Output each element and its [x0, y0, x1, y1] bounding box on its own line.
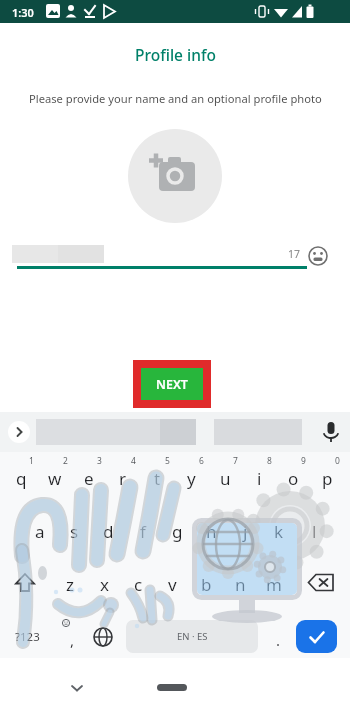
staticText: s — [70, 520, 79, 543]
staticText: 6 — [199, 455, 204, 467]
button[interactable]: h — [194, 517, 228, 545]
button[interactable]: e — [72, 464, 106, 492]
staticText: 1:30 — [12, 5, 34, 20]
button[interactable]: 7 — [228, 455, 242, 467]
button[interactable]: f — [126, 517, 160, 545]
staticText: i — [257, 467, 262, 490]
staticText: q — [16, 467, 27, 490]
staticText: p — [322, 467, 333, 490]
button[interactable]: x — [87, 570, 121, 598]
staticText: f — [140, 520, 146, 543]
staticText: u — [220, 467, 231, 490]
staticText: z — [66, 573, 74, 596]
staticText: 7 — [233, 455, 238, 467]
button[interactable]: u — [208, 464, 242, 492]
staticText: d — [103, 520, 114, 543]
staticText: e — [84, 467, 94, 490]
button[interactable]: n — [223, 570, 257, 598]
staticText: h — [206, 520, 217, 543]
staticText: ?123 — [15, 629, 40, 645]
button[interactable]: 4 — [126, 455, 140, 467]
staticText: 17 — [288, 247, 301, 261]
button[interactable]: s — [57, 517, 91, 545]
staticText: w — [48, 467, 62, 490]
staticText: 5 — [165, 455, 170, 467]
button[interactable]: v — [155, 570, 189, 598]
button[interactable]: w — [38, 464, 72, 492]
staticText: m — [266, 573, 282, 596]
button[interactable]: 9 — [296, 455, 310, 467]
button[interactable] — [305, 570, 339, 598]
staticText: 0 — [335, 455, 340, 467]
button[interactable]: 8 — [262, 455, 276, 467]
staticText: 8 — [267, 455, 272, 467]
staticText: o — [288, 467, 299, 490]
button[interactable] — [10, 570, 40, 598]
button[interactable] — [306, 244, 330, 268]
button[interactable]: , — [55, 626, 89, 654]
button[interactable]: k — [262, 517, 296, 545]
button[interactable]: . — [261, 626, 295, 654]
button[interactable]: g — [160, 517, 194, 545]
button[interactable]: m — [257, 570, 291, 598]
button[interactable]: p — [310, 464, 344, 492]
staticText: EN · ES — [177, 630, 208, 643]
button[interactable]: i — [242, 464, 276, 492]
button[interactable]: a — [23, 517, 57, 545]
staticText: b — [201, 573, 212, 596]
button[interactable]: y — [174, 464, 208, 492]
staticText: g — [172, 520, 183, 543]
button[interactable]: c — [121, 570, 155, 598]
staticText: NEXT — [156, 376, 188, 393]
button[interactable] — [128, 129, 222, 223]
staticText: 3 — [97, 455, 102, 467]
button[interactable]: 1 — [24, 455, 38, 467]
staticText: j — [243, 520, 248, 543]
button[interactable]: 0 — [330, 455, 344, 467]
staticText: 9 — [301, 455, 306, 467]
button[interactable] — [296, 620, 337, 653]
staticText: v — [168, 573, 177, 596]
staticText: . — [276, 630, 281, 650]
button[interactable]: 3 — [92, 455, 106, 467]
staticText: k — [274, 520, 284, 543]
button[interactable]: NEXT — [141, 368, 203, 400]
button[interactable]: q — [4, 464, 38, 492]
button[interactable] — [157, 684, 187, 691]
staticText: 4 — [131, 455, 136, 467]
staticText: l — [312, 520, 317, 543]
button[interactable]: EN · ES — [126, 620, 258, 653]
staticText: a — [35, 520, 45, 543]
button[interactable] — [8, 421, 30, 443]
button[interactable]: 6 — [194, 455, 208, 467]
staticText: Please provide your name and an optional… — [29, 91, 322, 106]
button[interactable]: o — [276, 464, 310, 492]
staticText: , — [70, 630, 75, 650]
staticText: 2 — [63, 455, 68, 467]
staticText: r — [119, 467, 127, 490]
staticText: t — [154, 467, 161, 490]
button[interactable]: 5 — [160, 455, 174, 467]
staticText: y — [187, 467, 196, 490]
button[interactable]: l — [297, 517, 331, 545]
button[interactable]: 2 — [58, 455, 72, 467]
staticText: x — [100, 573, 109, 596]
button[interactable] — [319, 420, 343, 444]
button[interactable]: j — [228, 517, 262, 545]
button[interactable]: d — [91, 517, 125, 545]
button[interactable]: b — [189, 570, 223, 598]
button[interactable]: ?123 — [5, 622, 49, 652]
button[interactable]: z — [53, 570, 87, 598]
staticText: 1 — [29, 455, 34, 467]
staticText: n — [235, 573, 246, 596]
button[interactable]: t — [140, 464, 174, 492]
staticText: Profile info — [135, 44, 216, 65]
button[interactable]: r — [106, 464, 140, 492]
staticText: c — [134, 573, 143, 596]
button[interactable] — [90, 624, 116, 650]
